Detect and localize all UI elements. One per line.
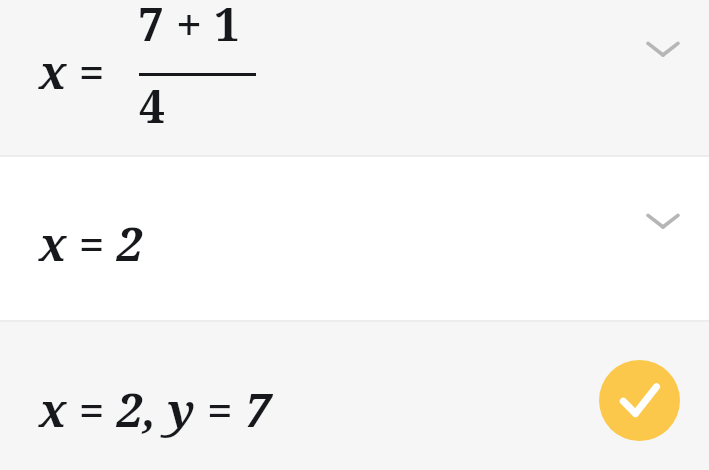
staticText: x =	[39, 40, 105, 103]
button[interactable]: x = 2, y = 7	[0, 320, 709, 470]
staticText: 4	[139, 74, 256, 134]
button[interactable]: x = 2	[0, 157, 709, 320]
button[interactable]: Expand step	[639, 197, 687, 245]
staticText: x = 2, y = 7	[39, 378, 271, 441]
staticText: 7 + 1	[138, 0, 240, 55]
button[interactable]: Correct answer	[599, 360, 680, 441]
button[interactable]: x =	[0, 0, 709, 157]
button[interactable]: Expand step	[639, 25, 687, 73]
staticText: x = 2	[39, 212, 143, 275]
